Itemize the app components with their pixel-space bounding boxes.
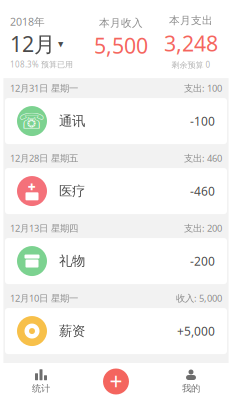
staticText: 支出: 100 — [184, 82, 222, 94]
staticText: ✚ — [28, 182, 36, 192]
staticText: 2018年 — [10, 14, 45, 29]
staticText: ☏ — [18, 109, 45, 133]
staticText: 12月07日 星期五 — [10, 362, 78, 374]
staticText: 支出: 200 — [184, 222, 222, 234]
staticText: 薪资 — [59, 323, 85, 339]
staticText: +5,000 — [177, 323, 215, 339]
staticText: 支出: 30 — [189, 362, 222, 374]
button[interactable]: 薪资 — [5, 308, 227, 354]
staticText: 12月28日 星期五 — [10, 152, 78, 164]
staticText: 12月 — [10, 30, 55, 58]
staticText: 3,248 — [164, 29, 218, 57]
staticText: 108.3% 预算已用 — [10, 59, 73, 70]
staticText: ◠ — [24, 390, 40, 400]
staticText: 本月收入 — [99, 16, 143, 29]
staticText: 12月31日 星期一 — [10, 82, 78, 94]
button[interactable]: 12月 — [10, 30, 63, 58]
staticText: -460 — [190, 183, 215, 199]
staticText: 5,500 — [94, 31, 148, 60]
staticText: 医疗 — [59, 183, 85, 199]
staticText: 剩余预算 0 — [171, 59, 210, 70]
staticText: 统计 — [32, 383, 50, 394]
button[interactable]: 统计 — [3, 363, 78, 400]
staticText: 本月支出 — [169, 14, 213, 27]
staticText: + — [109, 366, 122, 396]
staticText: 礼物 — [59, 253, 85, 269]
staticText: 通讯 — [59, 113, 85, 129]
button[interactable]: ☏ — [5, 98, 227, 144]
button[interactable]: 我的 — [153, 363, 228, 400]
button[interactable]: ✚ — [5, 168, 227, 214]
staticText: 12月13日 星期四 — [10, 222, 78, 234]
staticText: 支出: 460 — [184, 152, 222, 164]
staticText: 12月10日 星期一 — [10, 292, 78, 304]
staticText: ▾ — [58, 38, 63, 50]
button[interactable]: 添加 — [78, 363, 153, 400]
staticText: 收入: 5,000 — [176, 292, 222, 304]
button[interactable]: ◠ — [5, 378, 227, 400]
staticText: -100 — [190, 113, 215, 129]
staticText: -200 — [190, 253, 215, 269]
staticText: 我的 — [182, 383, 200, 394]
button[interactable]: 礼物 — [5, 238, 227, 284]
